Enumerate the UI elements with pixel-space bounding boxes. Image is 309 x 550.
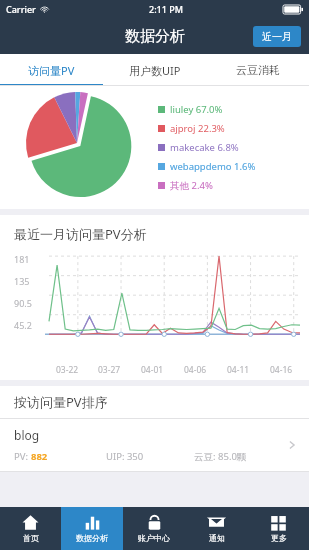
button[interactable]: 更多	[247, 507, 309, 550]
staticText: 更多	[271, 533, 287, 543]
staticText: PV:	[14, 450, 31, 463]
staticText: 账户中心	[138, 533, 170, 543]
staticText: 云豆: 85.0颗	[194, 450, 247, 463]
staticText: blog	[14, 427, 40, 443]
staticText: 04-06	[184, 364, 207, 376]
staticText: 数据分析	[76, 533, 108, 543]
staticText: 最近一月访问量PV分析	[14, 225, 147, 243]
staticText: makecake 6.8%	[170, 141, 239, 154]
button[interactable]: 用户数UIP	[103, 54, 206, 86]
staticText: 181	[14, 253, 30, 265]
staticText: 2:11 PM	[149, 3, 183, 15]
other: 首页	[22, 514, 39, 531]
other: Open blog details	[285, 438, 299, 452]
button[interactable]: 数据分析	[61, 507, 123, 550]
button[interactable]: 账户中心	[123, 507, 185, 550]
button[interactable]: 访问量PV	[0, 54, 103, 86]
other: 通知	[208, 514, 225, 531]
staticText: 用户数UIP	[129, 63, 181, 78]
staticText: 数据分析	[125, 27, 185, 46]
staticText: 04-01	[141, 364, 164, 376]
other: 更多	[270, 514, 287, 531]
button[interactable]: 通知	[185, 507, 247, 550]
button[interactable]: blog	[0, 419, 309, 471]
staticText: 通知	[209, 533, 225, 543]
staticText: 其他 2.4%	[170, 179, 213, 192]
button[interactable]: 首页	[0, 507, 61, 550]
staticText: 135	[14, 275, 30, 287]
staticText: 03-22	[56, 364, 79, 376]
button[interactable]: 近一月	[253, 26, 301, 47]
staticText: UIP: 350	[106, 450, 144, 463]
staticText: 882	[31, 450, 48, 463]
staticText: ajproj 22.3%	[170, 122, 225, 135]
staticText: liuley 67.0%	[170, 103, 223, 116]
staticText: 45.2	[14, 319, 32, 331]
other: 账户中心	[146, 514, 163, 531]
staticText: 90.5	[14, 297, 32, 309]
staticText: 04-16	[270, 364, 293, 376]
staticText: 按访问量PV排序	[14, 393, 108, 411]
staticText: 04-11	[227, 364, 250, 376]
staticText: 云豆消耗	[236, 63, 280, 77]
staticText: 首页	[23, 533, 39, 543]
staticText: 近一月	[262, 30, 292, 43]
staticText: Carrier	[6, 3, 36, 15]
other: 数据分析	[84, 514, 101, 531]
staticText: 访问量PV	[28, 63, 75, 78]
button[interactable]: 云豆消耗	[206, 54, 309, 86]
staticText: webappdemo 1.6%	[170, 160, 256, 173]
staticText: 03-27	[98, 364, 121, 376]
